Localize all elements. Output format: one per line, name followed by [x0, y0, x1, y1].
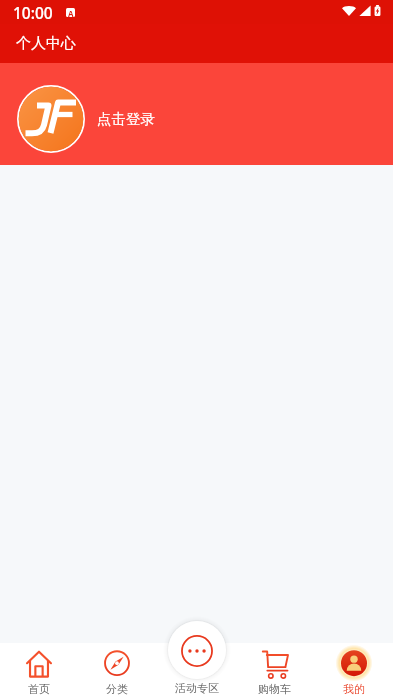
staticText: 活动专区: [175, 681, 219, 695]
staticText: 点击登录: [97, 110, 155, 128]
button[interactable]: 首页: [0, 643, 78, 700]
button[interactable]: 购物车: [235, 643, 314, 700]
staticText: A: [68, 8, 74, 17]
other: Profile: [341, 650, 367, 678]
other: Activity zone: [181, 635, 213, 667]
button[interactable]: 分类: [78, 643, 156, 700]
staticText: 分类: [106, 682, 128, 696]
staticText: 我的: [343, 682, 365, 696]
staticText: 个人中心: [16, 34, 76, 53]
button[interactable]: 点击登录: [0, 63, 393, 165]
staticText: 购物车: [258, 682, 291, 696]
button[interactable]: Profile: [314, 643, 393, 700]
button[interactable]: Activity zone: [157, 621, 236, 700]
staticText: 10:00: [13, 2, 53, 23]
staticText: 首页: [28, 682, 50, 696]
